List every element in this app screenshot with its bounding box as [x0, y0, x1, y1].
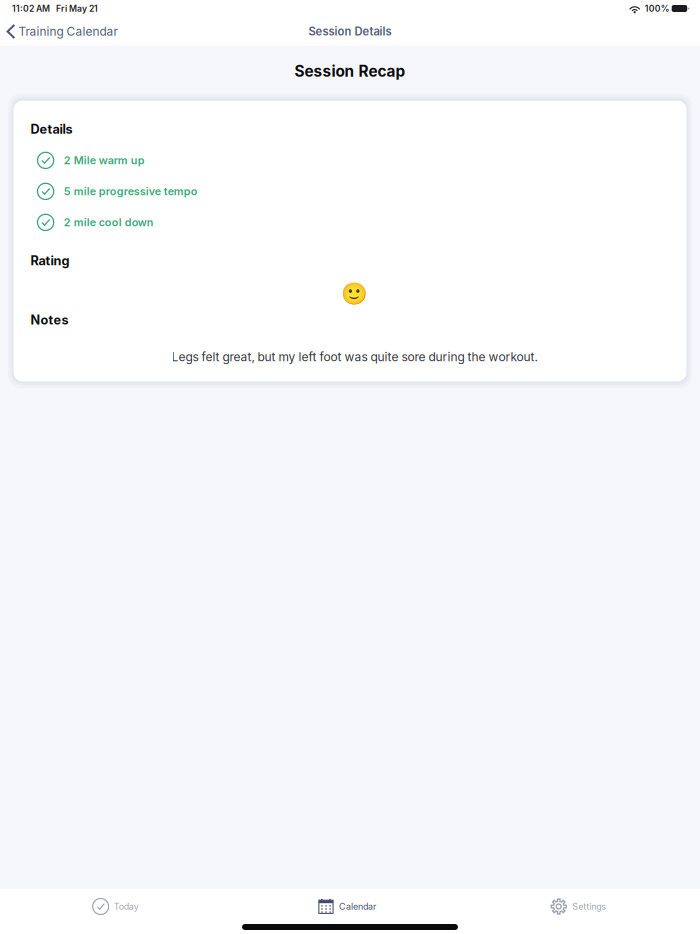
staticText: Training Calendar — [18, 24, 117, 39]
staticText: Notes — [30, 312, 68, 327]
staticText: Fri May 21 — [56, 3, 98, 14]
staticText: 100% — [645, 3, 670, 14]
staticText: Calendar — [339, 901, 376, 912]
staticText: 2 Mile warm up — [64, 154, 145, 167]
staticText: Session Details — [308, 25, 391, 38]
staticText: 5 mile progressive tempo — [64, 185, 198, 198]
staticText: Settings — [572, 901, 606, 912]
staticText: Today — [114, 901, 139, 912]
staticText: Legs felt great, but my left foot was qu… — [171, 349, 537, 364]
button[interactable]: Today — [0, 885, 231, 927]
button[interactable]: Calendar — [231, 885, 463, 927]
staticText: Session Recap — [294, 62, 405, 81]
button[interactable]: Training Calendar — [0, 18, 117, 44]
button[interactable]: Settings — [463, 885, 694, 927]
staticText: Rating — [30, 253, 69, 268]
staticText: 2 mile cool down — [64, 216, 154, 229]
staticText: Details — [30, 122, 72, 137]
staticText: 11:02 AM — [12, 3, 50, 14]
staticText: 🙂 — [341, 281, 368, 306]
